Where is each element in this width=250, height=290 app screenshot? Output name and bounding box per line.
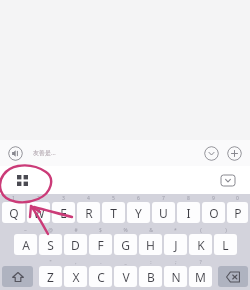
staticText: O [209,205,219,221]
staticText: * [174,227,177,234]
button[interactable]: # [64,227,87,255]
button[interactable]: Keyboard layouts [0,166,44,194]
staticText: T [110,205,117,221]
staticText: . [100,259,102,266]
staticText: Y [135,205,142,221]
staticText: , [75,259,77,266]
button[interactable]: * [164,227,187,255]
staticText: : [150,259,152,266]
staticText: % [123,227,128,234]
staticText: F [97,237,104,253]
staticText: ( [200,227,202,234]
staticText: R [85,205,93,221]
button[interactable]: ) [214,227,237,255]
button[interactable]: & [139,227,162,255]
button[interactable]: Shift [2,266,33,287]
staticText: W [33,205,45,221]
staticText: ) [225,227,227,234]
staticText: M [195,269,206,285]
button[interactable]: : [139,259,162,287]
staticText: 0 [236,195,239,202]
staticText: H [146,237,155,253]
button[interactable]: Hide keyboard [206,166,250,194]
staticText: 3 [62,195,65,202]
button[interactable]: 0 [227,195,248,223]
staticText: J [174,237,178,253]
staticText: ~ [24,227,27,234]
button[interactable]: , [64,259,87,287]
staticText: 7 [162,195,165,202]
staticText: I [186,205,191,221]
staticText: U [159,205,168,221]
staticText: Z [47,269,54,285]
button[interactable]: ; [164,259,187,287]
button[interactable]: 3 [52,195,75,223]
staticText: 5 [112,195,115,202]
staticText: ; [175,259,177,266]
staticText: # [74,227,78,234]
button[interactable]: _ [114,259,137,287]
staticText: 9 [212,195,215,202]
staticText: S [47,237,54,253]
staticText: G [121,237,130,253]
button[interactable]: % [114,227,137,255]
staticText: 8 [187,195,190,202]
staticText: _ [124,259,127,266]
staticText: D [71,237,80,253]
button[interactable]: 5 [102,195,125,223]
button[interactable]: Voice input [8,146,23,161]
staticText: C [97,269,105,285]
button[interactable]: ? [189,259,212,287]
staticText: 友善是… [33,149,56,157]
button[interactable]: Backspace [218,266,248,287]
button[interactable]: @ [39,227,62,255]
staticText: ? [199,259,202,266]
button[interactable]: 9 [202,195,225,223]
button[interactable]: 7 [152,195,175,223]
staticText: V [122,269,130,285]
button[interactable]: . [89,259,112,287]
staticText: K [197,237,205,253]
staticText: Q [9,205,19,221]
staticText: P [234,205,242,221]
button[interactable]: Collapse keyboard [204,146,219,161]
staticText: 4 [87,195,90,202]
staticText: E [60,205,67,221]
button[interactable]: " [39,259,62,287]
button[interactable]: Add [227,146,242,161]
staticText: " [49,259,52,266]
staticText: A [22,237,30,253]
button[interactable]: $ [89,227,112,255]
staticText: B [147,269,155,285]
staticText: X [72,269,80,285]
staticText: $ [99,227,102,234]
staticText: N [171,269,181,285]
staticText: 1 [12,195,15,202]
staticText: 6 [137,195,140,202]
button[interactable]: ~ [14,227,37,255]
button[interactable]: 1 [2,195,25,223]
staticText: 2 [37,195,40,202]
staticText: @ [48,227,53,234]
button[interactable]: ( [189,227,212,255]
staticText: & [149,227,153,234]
button[interactable]: 6 [127,195,150,223]
button[interactable]: 8 [177,195,200,223]
button[interactable]: 4 [77,195,100,223]
button[interactable]: 2 [27,195,50,223]
staticText: L [222,237,229,253]
